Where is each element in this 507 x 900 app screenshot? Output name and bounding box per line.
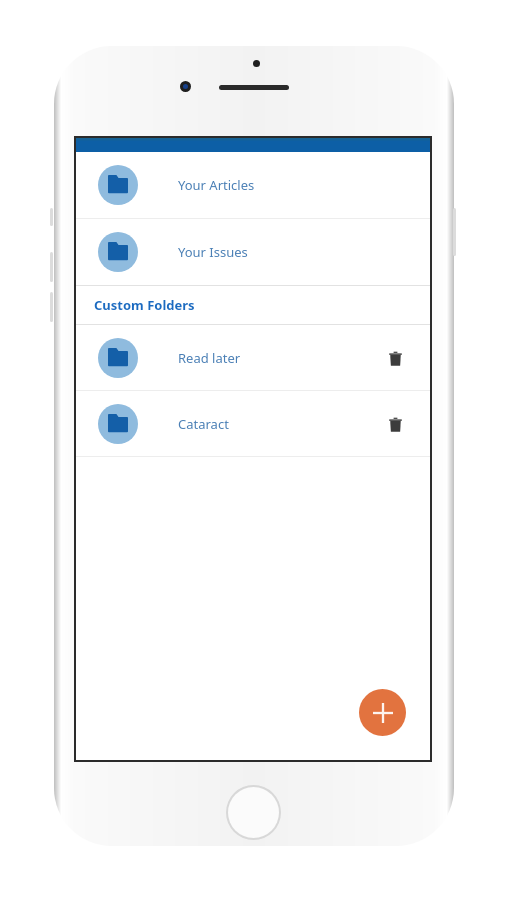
button[interactable]: Your Issues [76, 219, 430, 285]
button[interactable]: Cataract [76, 391, 430, 456]
button[interactable]: Read later [76, 325, 430, 390]
other: Home [228, 787, 279, 838]
staticText: Your Articles [178, 176, 255, 194]
button[interactable]: Delete Read later [378, 341, 412, 375]
staticText: Cataract [178, 415, 229, 433]
button[interactable]: Your Articles [76, 152, 430, 218]
staticText: Your Issues [178, 243, 248, 261]
staticText: Read later [178, 349, 241, 367]
button[interactable]: Add folder [359, 689, 406, 736]
button[interactable]: Delete Cataract [378, 407, 412, 441]
staticText: Custom Folders [94, 296, 195, 314]
